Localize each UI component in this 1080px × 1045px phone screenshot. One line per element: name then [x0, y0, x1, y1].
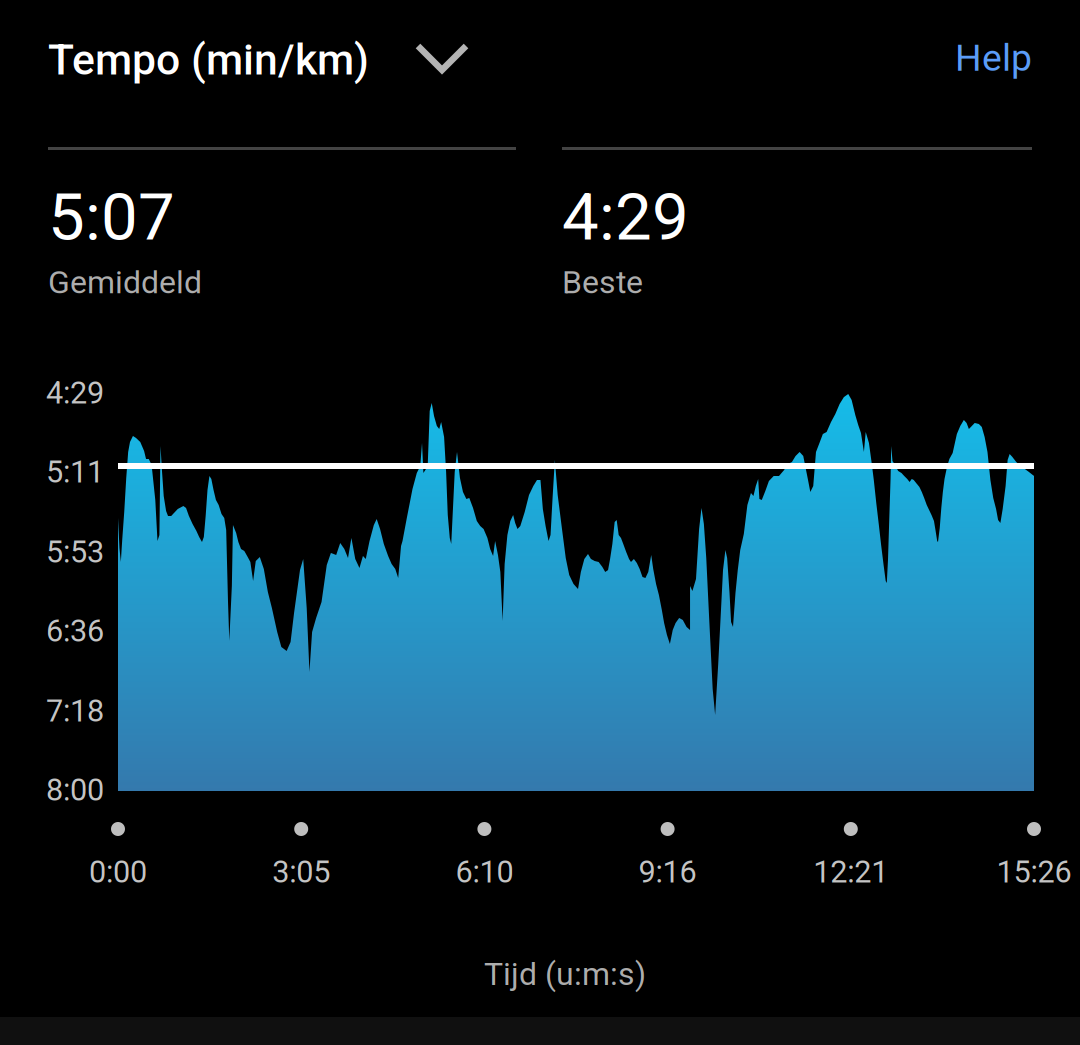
staticText: 5:11 — [46, 454, 104, 490]
button[interactable]: Help — [882, 0, 1032, 116]
staticText: 8:00 — [46, 772, 104, 808]
staticText: Beste — [562, 264, 643, 301]
staticText: 6:10 — [455, 854, 513, 890]
staticText: Gemiddeld — [48, 264, 202, 301]
staticText: Tempo (min/km) — [48, 35, 369, 85]
button[interactable]: Tempo (min/km) — [48, 2, 487, 118]
staticText: 4:29 — [562, 179, 689, 256]
staticText: 0:00 — [89, 854, 147, 890]
staticText: 7:18 — [46, 693, 104, 729]
staticText: 15:26 — [996, 854, 1071, 890]
staticText: 5:53 — [46, 534, 104, 570]
staticText: Tijd (u:m:s) — [484, 955, 646, 993]
staticText: 6:36 — [46, 613, 104, 649]
staticText: 5:07 — [48, 179, 175, 256]
staticText: 3:05 — [272, 854, 330, 890]
staticText: Help — [955, 36, 1032, 80]
staticText: 9:16 — [639, 854, 697, 890]
staticText: 4:29 — [46, 375, 104, 411]
staticText: 12:21 — [813, 854, 888, 890]
